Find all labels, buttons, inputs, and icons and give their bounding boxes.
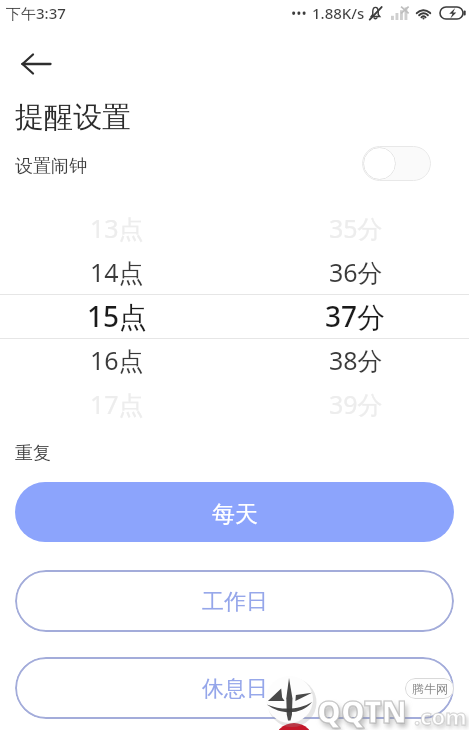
staticText: 1.88K/s [312, 3, 365, 23]
staticText: 设置闹钟 [15, 155, 87, 178]
staticText: QQTN [317, 691, 407, 730]
button[interactable]: Back [12, 40, 60, 88]
staticText: 39分 [329, 387, 383, 421]
staticText: QQTN [317, 691, 407, 730]
button[interactable]: Toggle alarm [362, 146, 431, 181]
staticText: 38分 [329, 343, 383, 377]
staticText: 重复 [15, 442, 51, 465]
staticText: 14点 [90, 255, 144, 289]
staticText: 15点 [87, 297, 148, 335]
staticText: 35分 [329, 211, 383, 245]
staticText: 提醒设置 [15, 99, 131, 136]
staticText: 下午3:37 [6, 3, 66, 23]
staticText: 16点 [90, 343, 144, 377]
staticText: 13点 [90, 211, 144, 245]
button[interactable]: 每天 [15, 482, 454, 542]
staticText: 17点 [90, 387, 144, 421]
staticText: 腾牛网 [412, 681, 448, 696]
staticText: 工作日 [202, 588, 268, 616]
staticText: .com [414, 701, 467, 730]
staticText: ••• [291, 4, 307, 23]
staticText: 37分 [325, 297, 386, 335]
staticText: .com [414, 701, 467, 730]
staticText: 休息日 [202, 675, 268, 703]
button[interactable]: 休息日 [15, 657, 454, 719]
staticText: 36分 [329, 255, 383, 289]
staticText: 每天 [212, 500, 258, 529]
button[interactable]: 工作日 [15, 570, 454, 632]
